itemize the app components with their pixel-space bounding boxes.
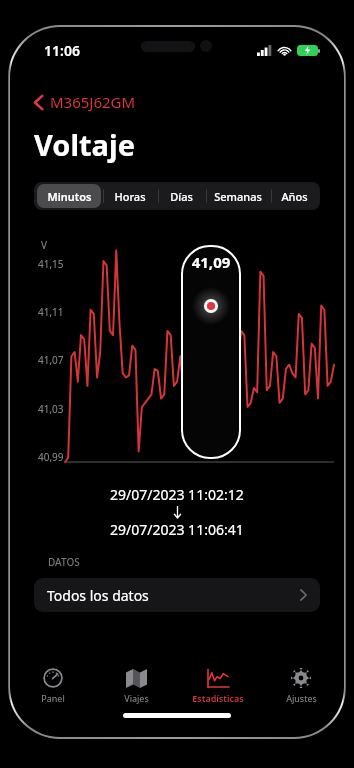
button[interactable]: Años — [271, 184, 317, 208]
staticText: Días — [170, 189, 193, 204]
staticText: Viajes — [124, 692, 149, 704]
other: Viajes — [126, 669, 147, 688]
other: Ajustes — [291, 668, 311, 688]
button[interactable]: Semanas — [206, 184, 269, 208]
staticText: DATOS — [48, 555, 80, 569]
staticText: 41,09 — [185, 252, 237, 272]
button[interactable]: Ajustes — [262, 665, 340, 707]
button[interactable]: M365J62GM — [28, 89, 142, 115]
staticText: Ajustes — [286, 692, 317, 704]
staticText: 29/07/2023 11:06:41 — [110, 520, 244, 539]
staticText: 41,15 — [38, 257, 64, 271]
button[interactable] — [182, 246, 240, 458]
other: Panel — [43, 668, 63, 688]
staticText: Todos los datos — [47, 586, 149, 605]
button[interactable]: Estadísticas — [179, 666, 257, 707]
staticText: Semanas — [214, 189, 262, 204]
button[interactable]: Minutos — [37, 184, 101, 208]
staticText: 41,11 — [38, 305, 64, 319]
staticText: Voltaje — [34, 125, 135, 164]
staticText: V — [41, 238, 47, 252]
staticText: Años — [281, 189, 308, 204]
button[interactable]: Panel — [14, 665, 92, 707]
staticText: 41,03 — [38, 402, 64, 416]
staticText: Minutos — [47, 189, 92, 204]
button[interactable]: Todos los datos — [34, 578, 320, 612]
staticText: M365J62GM — [50, 92, 136, 112]
staticText: Estadísticas — [192, 692, 244, 704]
staticText: 41,07 — [38, 353, 64, 367]
staticText: 40,99 — [38, 450, 64, 464]
staticText: Panel — [41, 692, 65, 704]
button[interactable]: Viajes — [97, 666, 175, 707]
staticText: 11:06 — [44, 41, 80, 60]
other: Estadísticas — [207, 669, 229, 688]
button[interactable]: Días — [158, 184, 204, 208]
button[interactable]: Horas — [103, 184, 156, 208]
staticText: Horas — [114, 189, 146, 204]
staticText: 29/07/2023 11:02:12 — [110, 485, 244, 504]
